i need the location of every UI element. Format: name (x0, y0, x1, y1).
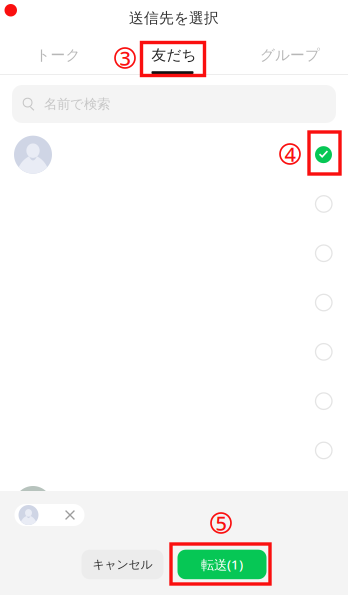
staticText: 5 (215, 510, 226, 536)
button[interactable]: キャンセル (81, 550, 163, 579)
staticText: 3 (119, 45, 130, 71)
staticText: キャンセル (92, 557, 152, 572)
staticText: グループ (260, 46, 320, 64)
staticText: 名前で検索 (44, 96, 110, 112)
staticText: トーク (35, 46, 80, 64)
button[interactable]: 名前で検索 (12, 85, 336, 123)
button[interactable] (0, 130, 348, 179)
staticText: 転送(1) (201, 556, 243, 573)
staticText: 友だち (151, 46, 196, 64)
staticText: 4 (284, 141, 295, 167)
button[interactable]: グループ (232, 36, 348, 74)
button[interactable]: 友だち (116, 36, 232, 74)
button[interactable]: トーク (0, 36, 116, 74)
button[interactable]: 転送(1) (177, 550, 266, 579)
staticText: 送信先を選択 (129, 9, 219, 27)
